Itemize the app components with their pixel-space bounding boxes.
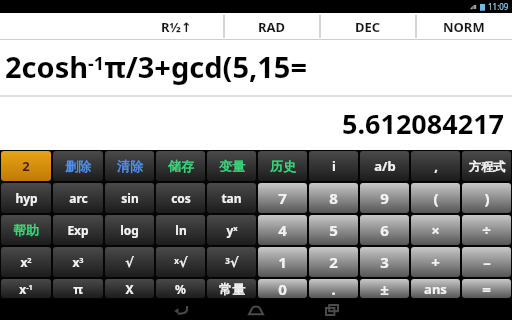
- staticText: x-1: [19, 281, 33, 297]
- button[interactable]: 1: [258, 247, 307, 277]
- button[interactable]: x√: [156, 247, 205, 277]
- button[interactable]: 帮助: [1, 215, 51, 245]
- staticText: 11:09: [488, 1, 509, 12]
- button[interactable]: i: [309, 151, 358, 181]
- button[interactable]: 删除: [53, 151, 103, 181]
- staticText: 1: [278, 252, 287, 272]
- button[interactable]: 方程式: [462, 151, 511, 181]
- button[interactable]: x2: [1, 247, 51, 277]
- button[interactable]: 清除: [105, 151, 154, 181]
- staticText: 9: [380, 188, 389, 208]
- button[interactable]: tan: [207, 183, 256, 213]
- button[interactable]: %: [156, 279, 205, 298]
- button[interactable]: π: [53, 279, 103, 298]
- staticText: 3: [380, 252, 389, 272]
- staticText: DEC: [355, 18, 381, 36]
- button[interactable]: 3: [360, 247, 409, 277]
- button[interactable]: Exp: [53, 215, 103, 245]
- staticText: %: [175, 281, 186, 297]
- button[interactable]: 9: [360, 183, 409, 213]
- staticText: Exp: [67, 222, 89, 238]
- button[interactable]: ans: [411, 279, 460, 298]
- staticText: +: [431, 252, 440, 272]
- staticText: x3: [72, 254, 84, 270]
- button[interactable]: ×: [411, 215, 460, 245]
- staticText: 清除: [117, 158, 143, 174]
- button[interactable]: 2cosh-1π/3+gcd(5,15=: [0, 40, 512, 96]
- staticText: X: [125, 281, 134, 297]
- button[interactable]: Recent apps: [319, 301, 345, 319]
- staticText: a/b: [374, 157, 396, 175]
- button[interactable]: ÷: [462, 215, 511, 245]
- button[interactable]: 历史: [258, 151, 307, 181]
- staticText: 8: [329, 188, 338, 208]
- staticText: 6: [380, 220, 389, 240]
- button[interactable]: RAD: [224, 13, 320, 40]
- button[interactable]: 2: [1, 151, 51, 181]
- button[interactable]: 6: [360, 215, 409, 245]
- button[interactable]: ): [462, 183, 511, 213]
- button[interactable]: yx: [207, 215, 256, 245]
- button[interactable]: 8: [309, 183, 358, 213]
- button[interactable]: x3: [53, 247, 103, 277]
- button[interactable]: 储存: [156, 151, 205, 181]
- button[interactable]: 常量: [207, 279, 256, 298]
- staticText: 4: [278, 220, 287, 240]
- button[interactable]: 4: [258, 215, 307, 245]
- staticText: π: [73, 280, 83, 298]
- button[interactable]: –: [462, 247, 511, 277]
- staticText: ±: [380, 279, 389, 298]
- button[interactable]: 7: [258, 183, 307, 213]
- staticText: 删除: [65, 158, 91, 174]
- button[interactable]: R½↑: [128, 13, 224, 40]
- staticText: ,: [434, 157, 438, 175]
- staticText: √: [125, 255, 134, 270]
- staticText: 变量: [219, 158, 245, 174]
- staticText: RAD: [258, 18, 286, 36]
- button[interactable]: ±: [360, 279, 409, 298]
- staticText: i: [332, 157, 336, 175]
- button[interactable]: Home: [243, 301, 269, 319]
- button[interactable]: ln: [156, 215, 205, 245]
- button[interactable]: X: [105, 279, 154, 298]
- staticText: 2cosh-1π/3+gcd(5,15=: [5, 47, 307, 86]
- button[interactable]: 0: [258, 279, 307, 298]
- button[interactable]: 5: [309, 215, 358, 245]
- staticText: 3√: [225, 255, 239, 270]
- button[interactable]: .: [309, 279, 358, 298]
- staticText: 5.612084217: [342, 105, 505, 142]
- button[interactable]: NORM: [416, 13, 512, 40]
- button[interactable]: sin: [105, 183, 154, 213]
- staticText: (: [433, 188, 439, 208]
- staticText: –: [483, 252, 491, 272]
- button[interactable]: 变量: [207, 151, 256, 181]
- button[interactable]: =: [462, 279, 511, 298]
- staticText: 0: [278, 279, 287, 298]
- staticText: ln: [175, 222, 187, 238]
- button[interactable]: +: [411, 247, 460, 277]
- button[interactable]: log: [105, 215, 154, 245]
- button[interactable]: ,: [411, 151, 460, 181]
- button[interactable]: DEC: [320, 13, 416, 40]
- staticText: 2: [329, 252, 338, 272]
- button[interactable]: x-1: [1, 279, 51, 298]
- staticText: yx: [226, 222, 238, 238]
- staticText: ): [484, 188, 490, 208]
- button[interactable]: cos: [156, 183, 205, 213]
- staticText: 常量: [219, 281, 245, 297]
- staticText: .: [331, 279, 336, 298]
- button[interactable]: hyp: [1, 183, 51, 213]
- staticText: sin: [121, 190, 139, 206]
- staticText: 储存: [168, 158, 194, 174]
- button[interactable]: 2: [309, 247, 358, 277]
- button[interactable]: 5.612084217: [0, 97, 512, 150]
- staticText: hyp: [15, 190, 38, 206]
- staticText: 7: [278, 188, 287, 208]
- button[interactable]: arc: [53, 183, 103, 213]
- staticText: arc: [69, 190, 88, 206]
- button[interactable]: √: [105, 247, 154, 277]
- button[interactable]: (: [411, 183, 460, 213]
- button[interactable]: a/b: [360, 151, 409, 181]
- button[interactable]: Back: [167, 301, 193, 319]
- button[interactable]: 3√: [207, 247, 256, 277]
